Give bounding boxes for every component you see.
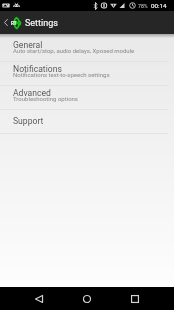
button[interactable]: General xyxy=(0,38,174,61)
button[interactable]: Advanced xyxy=(0,86,174,109)
staticText: 00:14 xyxy=(151,2,167,9)
staticText: RT xyxy=(11,21,17,26)
button[interactable]: Recent apps xyxy=(111,287,159,310)
button[interactable]: Support xyxy=(0,110,174,133)
staticText: Troubleshooting options xyxy=(13,95,78,102)
staticText: Auto start/stop, audio delays, Xposed mo… xyxy=(13,47,135,54)
staticText: General xyxy=(13,40,43,50)
button[interactable]: Home xyxy=(63,287,111,310)
button[interactable]: Navigate up xyxy=(0,11,12,34)
staticText: Settings xyxy=(25,18,58,29)
button[interactable]: Back xyxy=(15,287,63,310)
staticText: Advanced xyxy=(13,88,51,98)
staticText: Notifications text-to-speech settings xyxy=(13,71,110,78)
button[interactable]: Notifications xyxy=(0,62,174,85)
staticText: Notifications xyxy=(13,64,62,74)
staticText: Support xyxy=(13,116,44,126)
staticText: 78% xyxy=(138,3,148,9)
